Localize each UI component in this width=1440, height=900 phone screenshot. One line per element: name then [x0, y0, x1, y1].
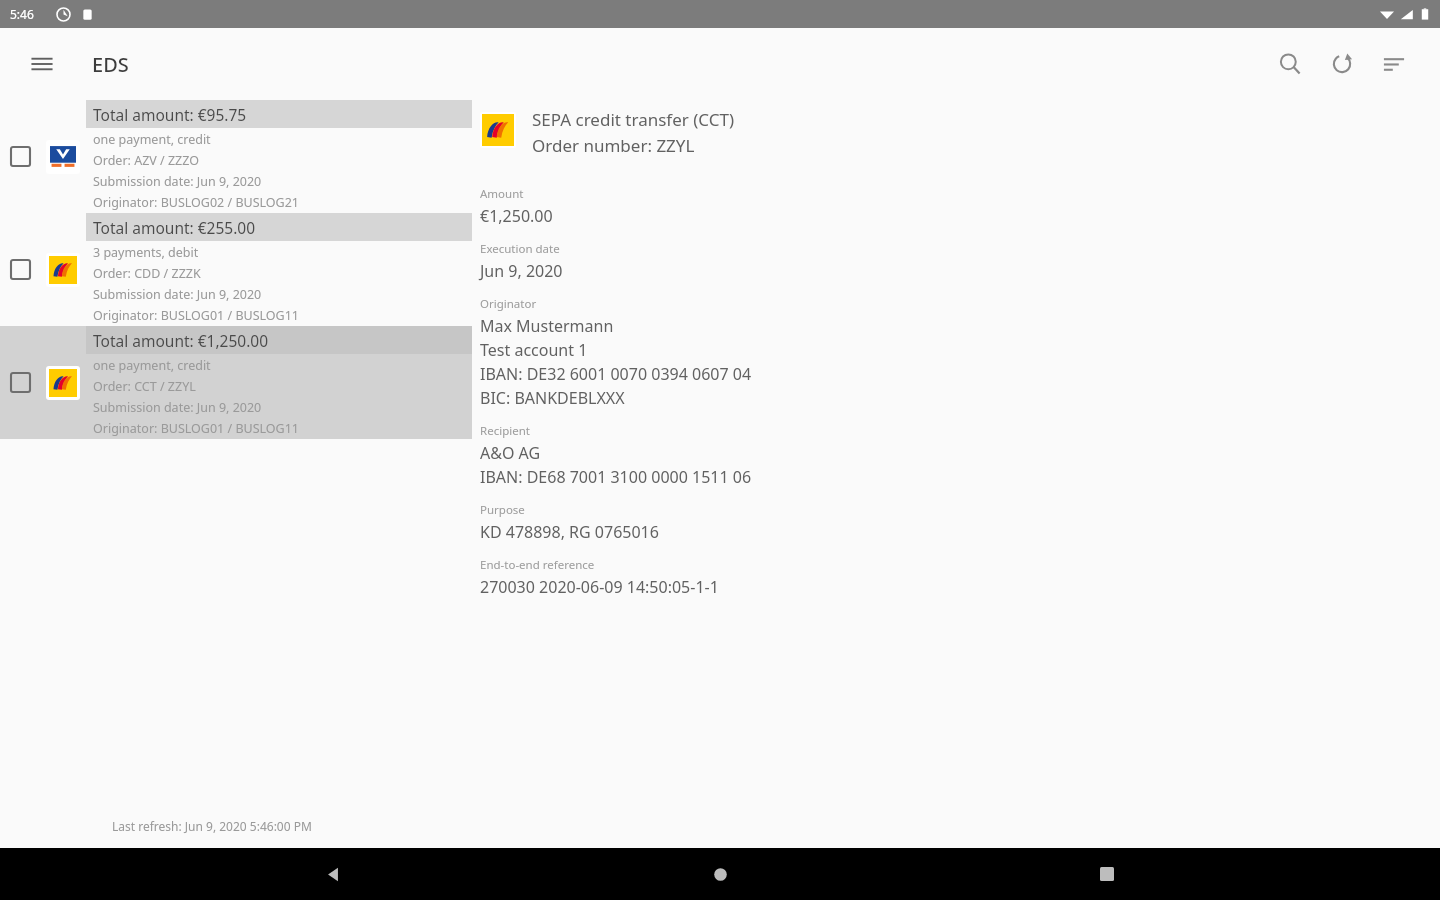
staticText: Max Mustermann: [480, 315, 614, 339]
staticText: BIC: BANKDEBLXXX: [480, 387, 625, 411]
staticText: Purpose: [480, 502, 525, 521]
staticText: 270030 2020-06-09 14:50:05-1-1: [480, 576, 719, 600]
staticText: EDS: [92, 51, 129, 78]
button[interactable]: Sort: [1368, 38, 1420, 90]
staticText: Amount: [480, 186, 524, 205]
button[interactable]: Total amount: €95.75: [0, 100, 472, 213]
staticText: A&O AG: [480, 442, 541, 466]
staticText: €1,250.00: [480, 205, 553, 229]
staticText: Total amount: €255.00: [93, 217, 256, 238]
staticText: Order: AZV / ZZZO: [93, 152, 200, 173]
staticText: one payment, credit: [93, 131, 211, 152]
staticText: Test account 1: [480, 339, 588, 363]
staticText: 3 payments, debit: [93, 244, 199, 265]
staticText: Submission date: Jun 9, 2020: [93, 286, 262, 307]
staticText: Execution date: [480, 241, 560, 260]
staticText: Originator: [480, 296, 537, 315]
button[interactable]: Home: [696, 850, 744, 898]
button[interactable]: Search: [1264, 38, 1316, 90]
staticText: Submission date: Jun 9, 2020: [93, 399, 262, 420]
staticText: Total amount: €95.75: [93, 104, 247, 125]
staticText: Originator: BUSLOG01 / BUSLOG11: [93, 420, 299, 439]
staticText: Order number: ZZYL: [532, 134, 695, 160]
staticText: Last refresh: Jun 9, 2020 5:46:00 PM: [112, 818, 312, 834]
staticText: Total amount: €1,250.00: [93, 330, 269, 351]
staticText: SEPA credit transfer (CCT): [532, 108, 735, 134]
staticText: Order: CDD / ZZZK: [93, 265, 201, 286]
staticText: Submission date: Jun 9, 2020: [93, 173, 262, 194]
button[interactable]: Open navigation menu: [18, 40, 66, 88]
button[interactable]: Total amount: €255.00: [0, 213, 472, 326]
staticText: one payment, credit: [93, 357, 211, 378]
button[interactable]: Total amount: €1,250.00: [0, 326, 472, 439]
staticText: End-to-end reference: [480, 557, 595, 576]
button[interactable]: Back: [309, 850, 357, 898]
staticText: IBAN: DE32 6001 0070 0394 0607 04: [480, 363, 752, 387]
staticText: IBAN: DE68 7001 3100 0000 1511 06: [480, 466, 752, 490]
staticText: Jun 9, 2020: [480, 260, 563, 284]
staticText: KD 478898, RG 0765016: [480, 521, 659, 545]
staticText: Originator: BUSLOG02 / BUSLOG21: [93, 194, 299, 213]
button[interactable]: Recent apps: [1083, 850, 1131, 898]
staticText: 5:46: [10, 6, 34, 22]
button[interactable]: Refresh: [1316, 38, 1368, 90]
staticText: Order: CCT / ZZYL: [93, 378, 196, 399]
staticText: Originator: BUSLOG01 / BUSLOG11: [93, 307, 299, 326]
staticText: Recipient: [480, 423, 530, 442]
